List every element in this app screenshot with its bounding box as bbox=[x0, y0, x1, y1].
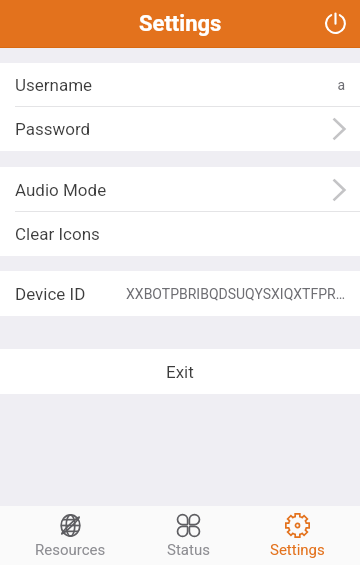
button[interactable]: Settings bbox=[235, 506, 360, 565]
staticText: Audio Mode bbox=[15, 180, 120, 200]
button[interactable]: Device ID bbox=[0, 271, 360, 316]
staticText: Device ID bbox=[15, 284, 120, 304]
button[interactable]: Resources bbox=[0, 506, 141, 565]
staticText: Settings bbox=[139, 11, 222, 37]
button[interactable]: Clear Icons bbox=[0, 212, 360, 256]
staticText: Username bbox=[15, 75, 120, 95]
staticText: XXBOTPBRIBQDSUQYSXIQXTFPRMPKXAPCQ bbox=[120, 286, 345, 302]
staticText: Password bbox=[15, 119, 120, 139]
button[interactable]: Exit bbox=[0, 349, 360, 394]
button[interactable]: Audio Mode bbox=[0, 167, 360, 212]
staticText: Exit bbox=[166, 362, 194, 382]
staticText: Resources bbox=[35, 541, 106, 559]
button[interactable]: Power bbox=[321, 9, 349, 37]
button[interactable]: Status bbox=[141, 506, 235, 565]
staticText: Settings bbox=[270, 541, 325, 559]
staticText: Status bbox=[167, 541, 210, 559]
staticText: Clear Icons bbox=[15, 224, 120, 244]
button[interactable]: Password bbox=[0, 107, 360, 151]
staticText: a bbox=[120, 77, 345, 93]
button[interactable]: Username bbox=[0, 63, 360, 107]
